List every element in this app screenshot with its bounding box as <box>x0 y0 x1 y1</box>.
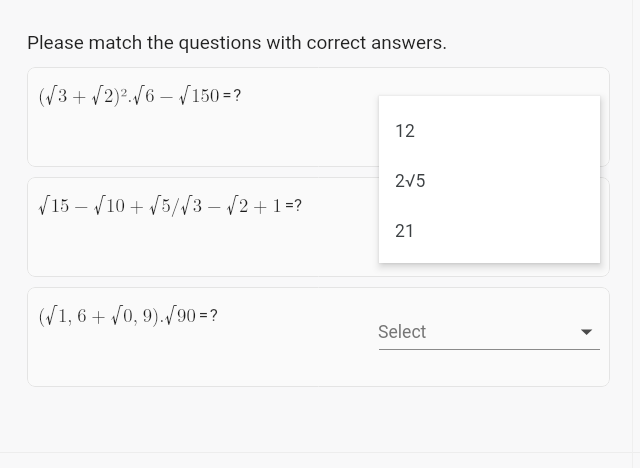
staticText: √15 − √10 + √5/√3 − √2 + 1 =? <box>38 186 303 220</box>
staticText: 12 <box>395 121 415 142</box>
button[interactable]: 2√5 <box>379 156 600 206</box>
staticText: 21 <box>395 221 415 242</box>
button[interactable]: Select answer <box>379 318 600 348</box>
staticText: (√3 + √2)².√6 − √150 = ? <box>38 76 242 110</box>
staticText: Please match the questions with correct … <box>27 31 448 53</box>
staticText: 2√5 <box>395 171 426 192</box>
button[interactable]: 12 <box>379 106 600 156</box>
staticText: Select <box>378 322 427 343</box>
staticText: (√1, 6 + √0, 9).√90 = ? <box>38 296 218 330</box>
button[interactable]: 21 <box>379 206 600 256</box>
